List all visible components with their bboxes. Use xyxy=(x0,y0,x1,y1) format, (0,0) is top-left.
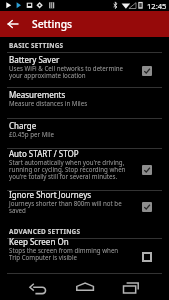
button[interactable]: Keep Screen On xyxy=(0,239,169,274)
staticText: Battery Saver xyxy=(9,54,60,65)
button[interactable]: Recent apps xyxy=(119,274,145,300)
button[interactable]: Measurements xyxy=(0,88,169,119)
staticText: Start automatically when you're driving,… xyxy=(9,158,126,180)
staticText: Settings xyxy=(32,17,73,31)
staticText: Measurements xyxy=(9,89,66,100)
button[interactable]: Battery Saver xyxy=(0,53,169,88)
staticText: Auto START / STOP xyxy=(9,148,79,159)
staticText: 12:45 xyxy=(147,1,167,11)
button[interactable]: Auto START / STOP xyxy=(0,149,169,191)
staticText: Measure distances in Miles xyxy=(9,99,88,107)
staticText: Uses WiFi & Cell networks to determine y… xyxy=(9,64,124,79)
staticText: Charge xyxy=(9,120,37,131)
button[interactable]: Back xyxy=(0,11,26,37)
staticText: Stops the screen from dimming when Trip … xyxy=(9,246,119,261)
button[interactable]: Back xyxy=(25,274,51,300)
staticText: £0.45p per Mile xyxy=(9,130,54,138)
button[interactable]: Charge xyxy=(0,119,169,149)
button[interactable]: Ignore Short Journeys xyxy=(0,191,169,222)
staticText: Keep Screen On xyxy=(9,236,69,247)
staticText: ADVANCED SETTINGS xyxy=(9,227,81,236)
staticText: Ignore Short Journeys xyxy=(9,189,92,200)
staticText: Journeys shorter than 800m will not be s… xyxy=(9,199,122,214)
button[interactable]: Home xyxy=(72,274,98,300)
staticText: BASIC SETTINGS xyxy=(9,41,64,50)
